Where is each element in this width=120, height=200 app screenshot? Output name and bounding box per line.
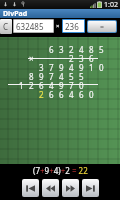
staticText: 9 bbox=[59, 80, 64, 91]
staticText: 7 bbox=[49, 71, 54, 82]
staticText: × bbox=[29, 53, 34, 64]
staticText: 6 bbox=[59, 89, 64, 100]
staticText: (7+9+4)+2 = 22 bbox=[33, 165, 88, 176]
staticText: 5 bbox=[99, 44, 104, 55]
staticText: × bbox=[56, 22, 60, 30]
button[interactable]: C bbox=[0, 19, 12, 34]
staticText: 3 bbox=[59, 44, 64, 55]
staticText: 0 bbox=[79, 80, 84, 91]
staticText: 236 bbox=[65, 21, 79, 32]
staticText: 6 bbox=[49, 44, 54, 55]
staticText: 3 bbox=[39, 62, 44, 73]
staticText: 8 bbox=[89, 44, 94, 55]
staticText: 6 bbox=[79, 89, 84, 100]
staticText: 5 bbox=[79, 71, 84, 82]
staticText: 4 bbox=[49, 80, 54, 91]
staticText: 6 bbox=[49, 89, 54, 100]
staticText: 2 bbox=[39, 89, 44, 100]
staticText: 0 bbox=[89, 89, 94, 100]
button[interactable]: Skip to start bbox=[22, 179, 39, 197]
staticText: 7 bbox=[69, 80, 74, 91]
staticText: 7 bbox=[49, 62, 54, 73]
staticText: 1 bbox=[89, 62, 94, 73]
button[interactable]: Fast forward bbox=[62, 179, 79, 197]
staticText: DivPad bbox=[3, 9, 28, 18]
staticText: 4 bbox=[79, 44, 84, 55]
staticText: = bbox=[100, 22, 105, 32]
staticText: 3 bbox=[79, 53, 84, 64]
staticText: 632485 bbox=[16, 21, 44, 32]
staticText: 2 bbox=[69, 44, 74, 55]
button[interactable]: 236 bbox=[63, 20, 84, 32]
staticText: 6 bbox=[39, 80, 44, 91]
button[interactable]: Rewind bbox=[42, 179, 59, 197]
staticText: 9 bbox=[39, 71, 44, 82]
button[interactable]: Skip to end bbox=[82, 179, 99, 197]
staticText: 0 bbox=[99, 62, 104, 73]
button[interactable]: 632485 bbox=[14, 20, 53, 32]
staticText: 5 bbox=[69, 71, 74, 82]
staticText: 4 bbox=[59, 71, 64, 82]
staticText: 1 bbox=[19, 80, 24, 91]
staticText: 6 bbox=[89, 53, 94, 64]
staticText: 4 bbox=[69, 62, 74, 73]
staticText: 9 bbox=[59, 62, 64, 73]
staticText: C bbox=[3, 21, 9, 32]
staticText: 9 bbox=[79, 62, 84, 73]
staticText: 4 bbox=[69, 89, 74, 100]
staticText: 8 bbox=[29, 71, 34, 82]
staticText: 2 bbox=[29, 80, 34, 91]
staticText: 2 bbox=[69, 53, 74, 64]
button[interactable]: = bbox=[88, 21, 116, 32]
staticText: 1:02 bbox=[104, 0, 118, 9]
